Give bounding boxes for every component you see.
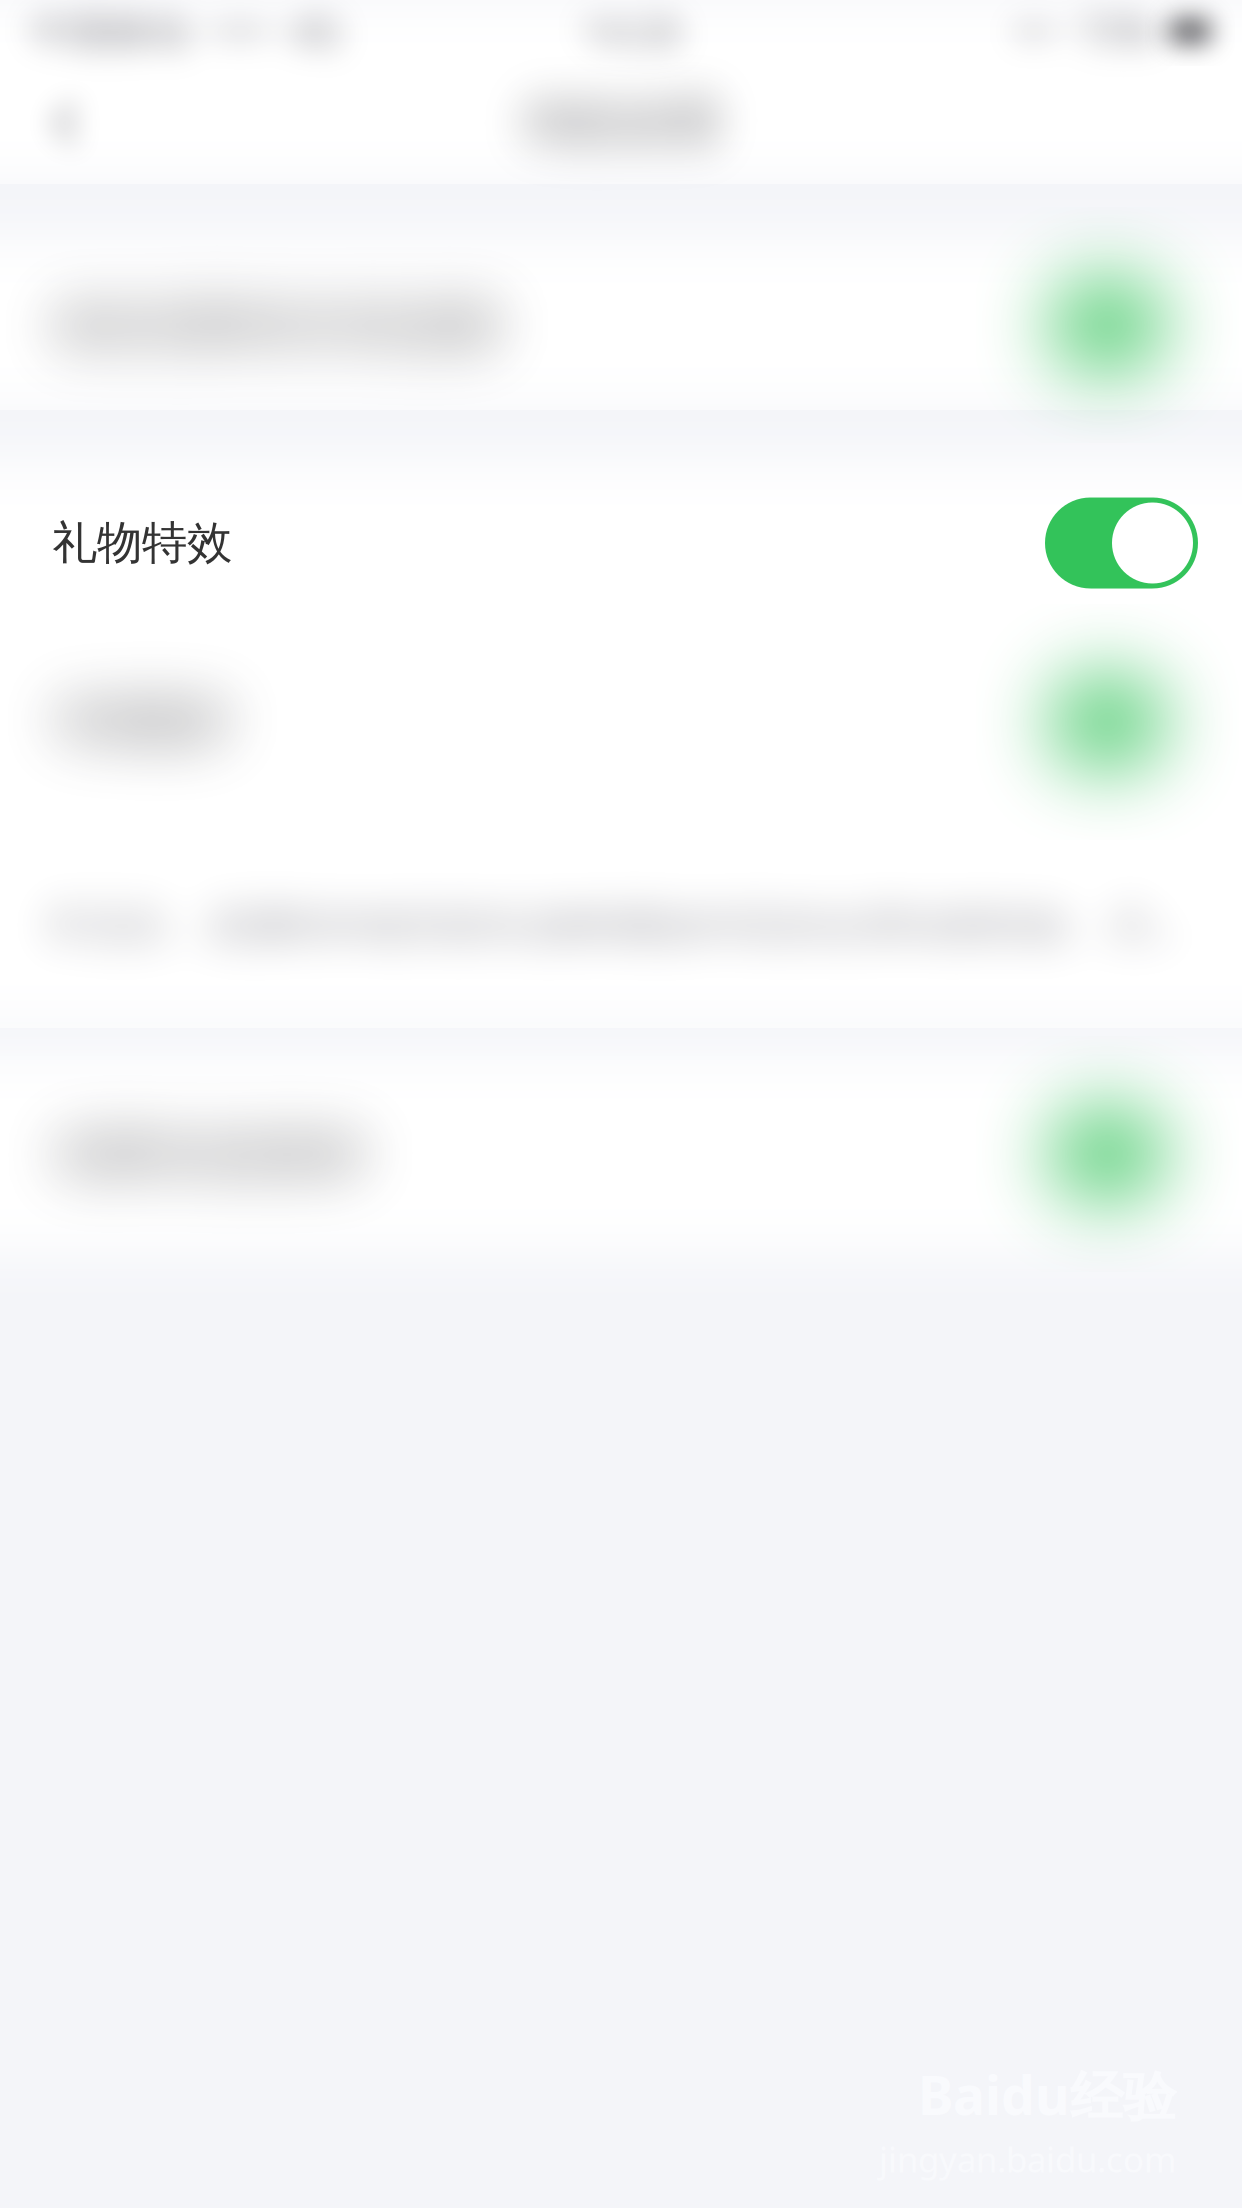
button[interactable]: 礼物特效 — [0, 462, 1242, 624]
button[interactable]: 直播间连麦邀请 — [0, 1056, 1242, 1252]
staticText: 礼物特效 — [52, 515, 232, 571]
button[interactable]: 弹幕飘屏 — [0, 624, 1242, 820]
button[interactable]: 接收直播间的消息提醒 — [0, 240, 1242, 410]
button[interactable]: Back — [26, 73, 106, 173]
